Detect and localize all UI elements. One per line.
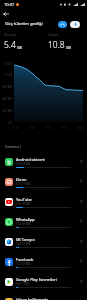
staticText: 525.43 MB — [16, 162, 31, 166]
staticText: 18.00 — [61, 126, 68, 130]
staticText: 10:07 — [4, 2, 15, 7]
staticText: 0 B — [8, 121, 12, 125]
button[interactable]: YouTube — [0, 192, 87, 212]
staticText: Güç tüketim grafiği — [5, 21, 43, 27]
staticText: 142.01 MB — [16, 242, 31, 246]
button[interactable]: Ekran — [0, 172, 87, 192]
staticText: 515.19 MB — [16, 182, 31, 186]
staticText: 320 MB — [2, 109, 12, 113]
staticText: 10.8 — [48, 39, 65, 51]
button[interactable]: WhatsApp — [0, 212, 87, 232]
staticText: GB — [17, 45, 22, 50]
staticText: 1.2 GB — [3, 73, 12, 77]
button[interactable]: Chart view — [58, 21, 67, 28]
staticText: GB — [66, 45, 71, 50]
staticText: 476.36 MB — [16, 202, 31, 206]
staticText: 1.6 GB — [3, 62, 12, 66]
button[interactable]: Download data — [70, 21, 80, 28]
staticText: 164.58 MB — [16, 222, 31, 226]
staticText: Hücresel — [4, 33, 17, 37]
staticText: 112.08 MB — [16, 262, 31, 266]
staticText: Mi Tarayıcı — [16, 237, 36, 242]
staticText: Hücre beklemede — [16, 297, 49, 300]
staticText: 5.4 — [4, 39, 16, 51]
staticText: Ekran — [16, 177, 27, 182]
staticText: YouTube — [16, 197, 32, 202]
staticText: Facebook — [16, 257, 34, 262]
button[interactable]: Google Play hizmetleri — [0, 272, 87, 292]
button[interactable]: Hücre beklemede — [0, 292, 87, 300]
button[interactable]: Mi Tarayıcı — [0, 232, 87, 252]
staticText: WhatsApp — [16, 217, 35, 222]
button[interactable]: Android sistemi — [0, 152, 87, 172]
staticText: Google Play hizmetleri — [16, 277, 57, 282]
staticText: 960 MB — [2, 85, 12, 89]
staticText: 12.00 — [45, 126, 52, 130]
button[interactable]: Back — [1, 9, 11, 18]
button[interactable]: Facebook — [0, 252, 87, 272]
staticText: 98.11 MB — [16, 282, 29, 286]
staticText: 00.00 — [12, 126, 19, 130]
staticText: 06.00 — [28, 126, 35, 130]
staticText: Sıralama 1 — [5, 144, 22, 149]
staticText: Şimdi — [77, 126, 84, 130]
staticText: 640 MB — [2, 97, 12, 101]
staticText: Android sistemi — [16, 157, 45, 162]
staticText: Toplam — [48, 33, 59, 37]
